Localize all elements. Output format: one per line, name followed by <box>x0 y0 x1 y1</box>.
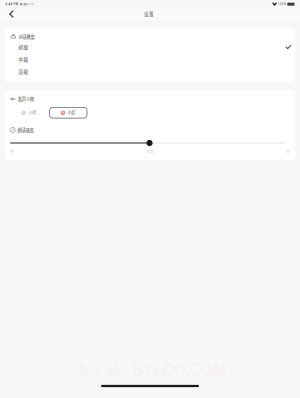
staticText: 朗读速度 <box>18 127 34 133</box>
staticText: 小红 <box>68 110 76 116</box>
button[interactable]: 小红 <box>50 107 87 118</box>
button[interactable]: Back <box>2 7 21 21</box>
staticText: 正常 <box>146 149 154 154</box>
button[interactable]: 初级 <box>5 41 295 53</box>
staticText: 中级 <box>18 56 28 62</box>
staticText: 慢 <box>10 149 14 154</box>
staticText: 6:44 PM <box>5 2 17 6</box>
staticText: 小明 <box>28 110 36 116</box>
staticText: 发声人物 <box>18 96 34 102</box>
staticText: 快 <box>286 149 290 154</box>
staticText: 对话难度 <box>19 33 35 39</box>
staticText: 设置 <box>144 10 154 17</box>
staticText: 100% <box>277 2 286 6</box>
button[interactable]: 中级 <box>5 53 295 65</box>
staticText: 飞下载 · BYEZXY.COM <box>73 358 227 380</box>
staticText: 高级 <box>18 68 28 75</box>
staticText: Sat Apr 15 <box>17 2 33 6</box>
button[interactable]: 小明 <box>21 107 50 118</box>
staticText: 初级 <box>18 44 28 50</box>
button[interactable]: 高级 <box>5 65 295 77</box>
